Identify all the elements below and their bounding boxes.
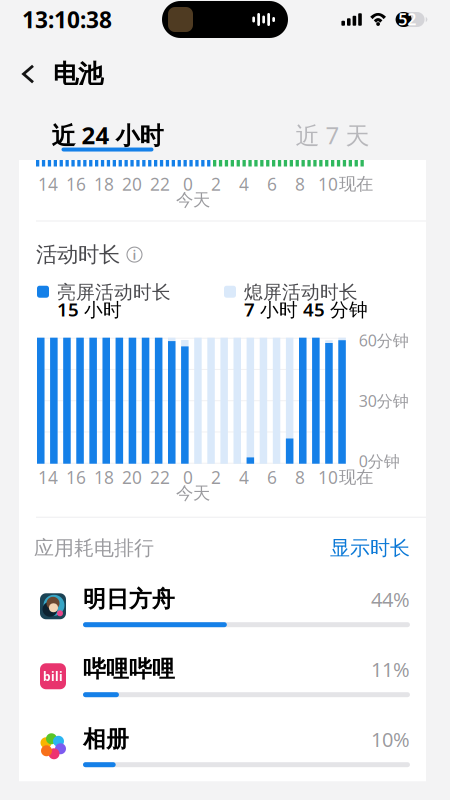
staticText: 相册 <box>83 725 129 753</box>
staticText: 0 <box>183 172 193 195</box>
staticText: 14 <box>38 466 58 489</box>
staticText: 60分钟 <box>359 330 409 351</box>
staticText: 亮屏活动时长 <box>57 281 171 304</box>
button[interactable]: 显示时长 <box>330 536 410 560</box>
staticText: 明日方舟 <box>83 585 175 613</box>
staticText: 2 <box>211 172 221 195</box>
staticText: 显示时长 <box>330 536 410 560</box>
staticText: 2 <box>211 466 221 489</box>
staticText: 30分钟 <box>359 390 409 411</box>
staticText: 0 <box>183 466 193 489</box>
staticText: 13:10:38 <box>22 4 112 34</box>
staticText: 近 24 小时 <box>51 119 163 151</box>
button[interactable]: 近 7 天 <box>215 109 450 160</box>
staticText: bili <box>43 668 63 684</box>
staticText: 电池 <box>53 58 103 89</box>
staticText: 8 <box>295 466 305 489</box>
staticText: 6 <box>267 172 277 195</box>
button[interactable]: 近 24 小时 <box>0 109 215 160</box>
staticText: 16 <box>66 172 86 195</box>
button[interactable]: 返回 <box>0 48 53 99</box>
staticText: 18 <box>94 172 114 195</box>
staticText: 14 <box>38 172 58 195</box>
staticText: 16 <box>66 466 86 489</box>
staticText: 0分钟 <box>359 450 400 472</box>
staticText: 今天 <box>176 189 210 211</box>
staticText: 8 <box>295 172 305 195</box>
button[interactable]: bili <box>19 641 410 711</box>
staticText: 近 7 天 <box>295 119 369 151</box>
staticText: 22 <box>150 172 170 195</box>
staticText: 44% <box>371 586 410 613</box>
staticText: 11% <box>371 656 410 683</box>
staticText: i <box>132 246 136 263</box>
staticText: 今天 <box>176 483 210 504</box>
staticText: 15 小时 <box>57 297 122 322</box>
staticText: 7 小时 45 分钟 <box>244 297 368 322</box>
staticText: 18 <box>94 466 114 489</box>
staticText: 20 <box>122 172 142 195</box>
staticText: 22 <box>150 466 170 489</box>
staticText: 4 <box>239 466 249 489</box>
staticText: 活动时长 <box>36 241 120 268</box>
staticText: 哔哩哔哩 <box>83 655 175 683</box>
staticText: 10 <box>318 172 338 195</box>
staticText: 6 <box>267 466 277 489</box>
staticText: 现在 <box>339 173 373 195</box>
staticText: 10 <box>318 466 338 489</box>
staticText: 52 <box>398 8 416 30</box>
staticText: 4 <box>239 172 249 195</box>
button[interactable]: 相册 <box>19 711 410 781</box>
staticText: 熄屏活动时长 <box>244 281 358 304</box>
staticText: 现在 <box>339 467 373 488</box>
staticText: 20 <box>122 466 142 489</box>
button[interactable]: 明日方舟 <box>19 571 410 641</box>
staticText: 10% <box>371 726 410 753</box>
staticText: 应用耗电排行 <box>34 536 154 560</box>
